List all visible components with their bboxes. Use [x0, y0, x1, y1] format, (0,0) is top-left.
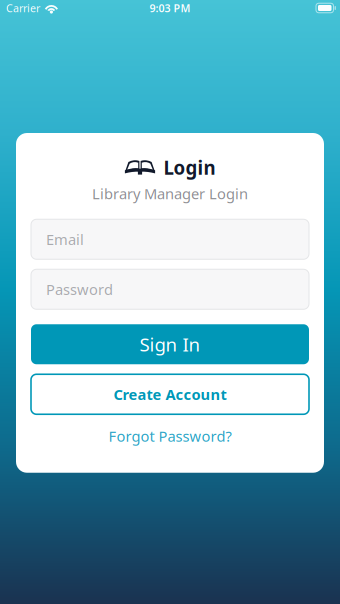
staticText: Sign In: [139, 332, 200, 357]
staticText: Forgot Password?: [108, 426, 231, 446]
button[interactable]: Create Account: [31, 374, 309, 414]
staticText: Password: [46, 279, 113, 299]
staticText: 9:03 PM: [149, 1, 190, 15]
button[interactable]: Forgot Password?: [98, 423, 241, 449]
staticText: Create Account: [113, 384, 226, 404]
staticText: Library Manager Login: [92, 184, 248, 203]
staticText: Login: [163, 155, 215, 180]
staticText: Email: [46, 229, 84, 249]
button[interactable]: Sign In: [31, 324, 309, 364]
staticText: Carrier: [6, 1, 40, 15]
